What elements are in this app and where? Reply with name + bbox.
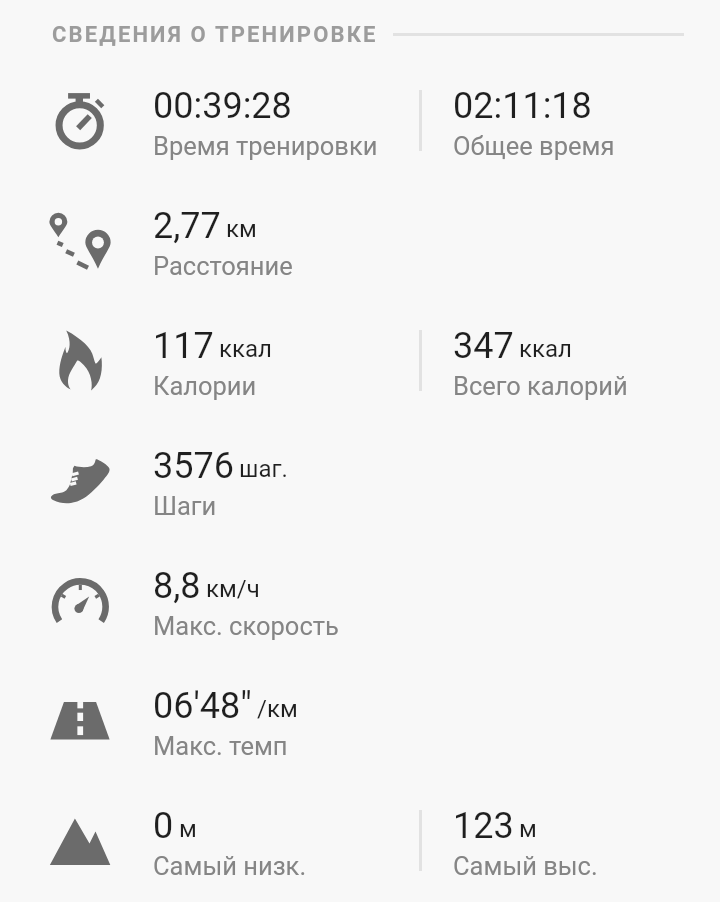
staticText: 0: [153, 805, 174, 847]
staticText: 347: [453, 325, 514, 367]
staticText: 02:11:18: [453, 85, 592, 127]
staticText: шаг.: [239, 455, 288, 483]
staticText: 06'48": [153, 685, 252, 727]
button[interactable]: Расстояние: [0, 190, 720, 310]
other: Макс. скорость: [49, 570, 111, 632]
staticText: м: [519, 815, 537, 843]
button[interactable]: Калории: [0, 310, 720, 430]
button[interactable]: Макс. скорость: [0, 550, 720, 670]
staticText: 3576: [153, 445, 234, 487]
staticText: Калории: [153, 371, 257, 401]
staticText: Шаги: [153, 491, 217, 521]
staticText: ккал: [519, 335, 572, 363]
staticText: 2,77: [153, 205, 221, 247]
staticText: Расстояние: [153, 251, 293, 281]
other: Время тренировки: [49, 90, 111, 152]
staticText: Всего калорий: [453, 371, 628, 401]
button[interactable]: Время тренировки: [0, 70, 720, 190]
staticText: 8,8: [153, 565, 201, 607]
other: Высота: [49, 810, 111, 872]
other: Макс. темп: [49, 690, 111, 752]
staticText: Самый низк.: [153, 851, 307, 881]
button[interactable]: Высота: [0, 790, 720, 902]
staticText: Самый выс.: [453, 851, 598, 881]
staticText: 117: [153, 325, 214, 367]
staticText: ккал: [219, 335, 272, 363]
other: Шаги: [49, 450, 111, 512]
staticText: Общее время: [453, 131, 615, 161]
staticText: 00:39:28: [153, 85, 292, 127]
other: Калории: [49, 330, 111, 392]
staticText: Время тренировки: [153, 131, 378, 161]
staticText: км/ч: [206, 575, 260, 603]
staticText: СВЕДЕНИЯ О ТРЕНИРОВКЕ: [52, 22, 378, 48]
button[interactable]: Шаги: [0, 430, 720, 550]
other: Расстояние: [49, 210, 111, 272]
staticText: Макс. скорость: [153, 611, 339, 641]
staticText: км: [226, 215, 257, 243]
staticText: 123: [453, 805, 514, 847]
staticText: /км: [257, 695, 298, 723]
staticText: Макс. темп: [153, 731, 288, 761]
staticText: м: [179, 815, 197, 843]
button[interactable]: Макс. темп: [0, 670, 720, 790]
